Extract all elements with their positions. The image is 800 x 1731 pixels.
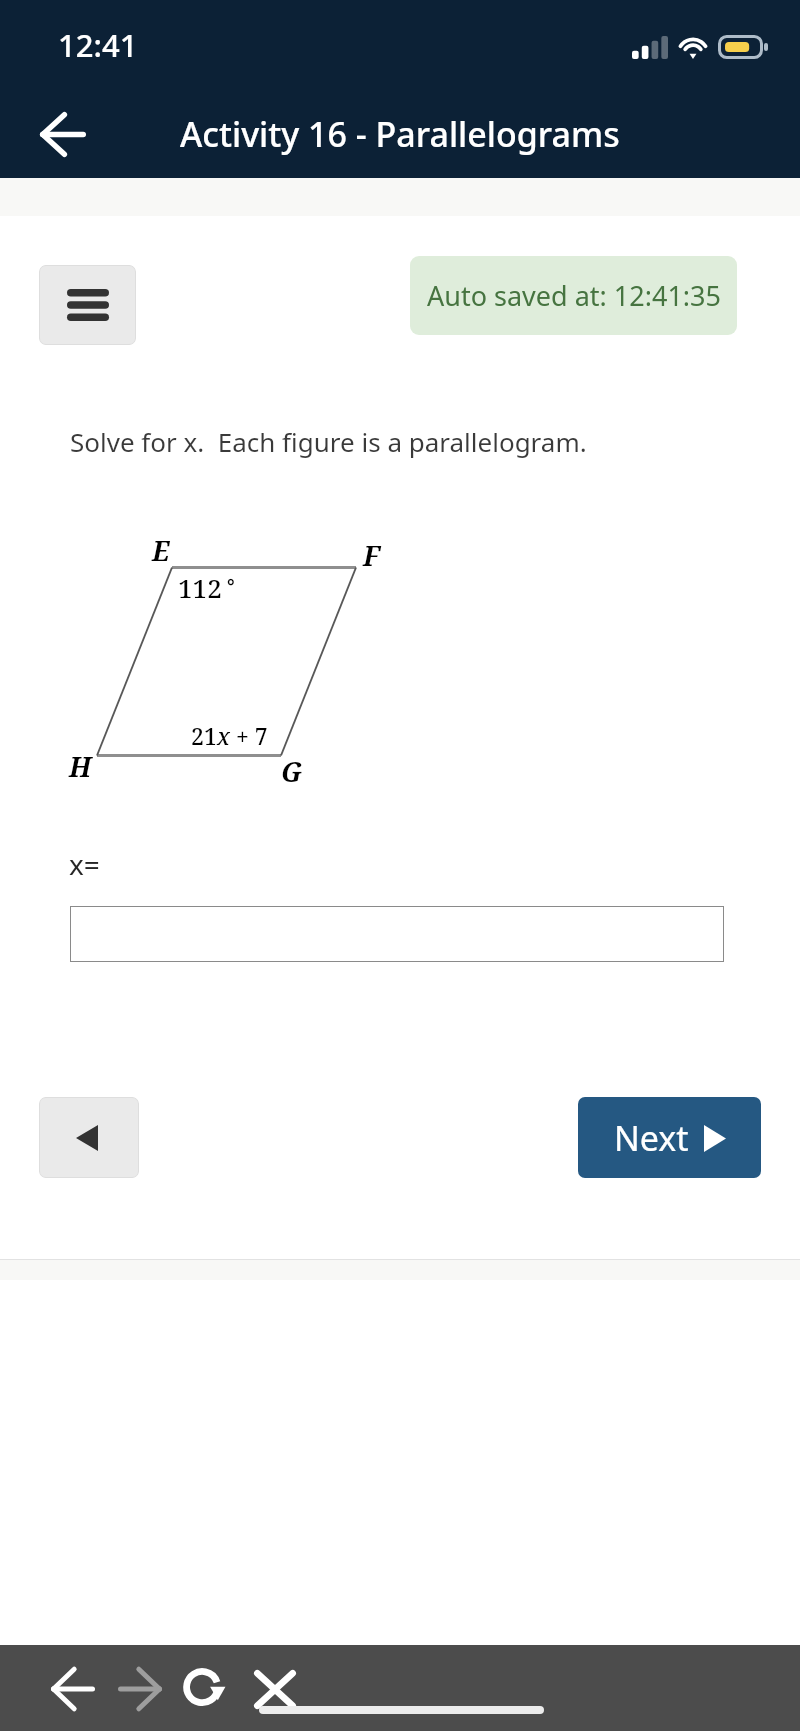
button[interactable]: Forward: [110, 1659, 170, 1719]
button[interactable]: Close: [245, 1659, 305, 1719]
button[interactable]: Previous: [39, 1097, 139, 1178]
button[interactable]: Back: [27, 98, 99, 170]
staticText: Activity 16 - Parallelograms: [180, 111, 620, 157]
button[interactable]: Next: [578, 1097, 761, 1178]
button[interactable]: Menu: [39, 265, 136, 345]
button[interactable]: Answer field: [70, 906, 724, 962]
button[interactable]: Back: [43, 1659, 103, 1719]
staticText: E: [152, 532, 170, 569]
staticText: 12:41: [58, 24, 138, 66]
staticText: x: [217, 720, 230, 751]
staticText: H: [69, 748, 92, 785]
staticText: G: [281, 753, 303, 790]
staticText: 21: [191, 720, 217, 751]
staticText: Solve for x. Each figure is a parallelog…: [70, 424, 587, 459]
staticText: x=: [69, 845, 100, 883]
staticText: Next: [614, 1115, 689, 1161]
staticText: 112: [178, 570, 222, 605]
staticText: °: [227, 574, 235, 600]
staticText: + 7: [230, 720, 268, 751]
button[interactable]: Reload: [177, 1659, 237, 1719]
staticText: Auto saved at: 12:41:35: [427, 277, 721, 314]
staticText: F: [363, 537, 380, 574]
